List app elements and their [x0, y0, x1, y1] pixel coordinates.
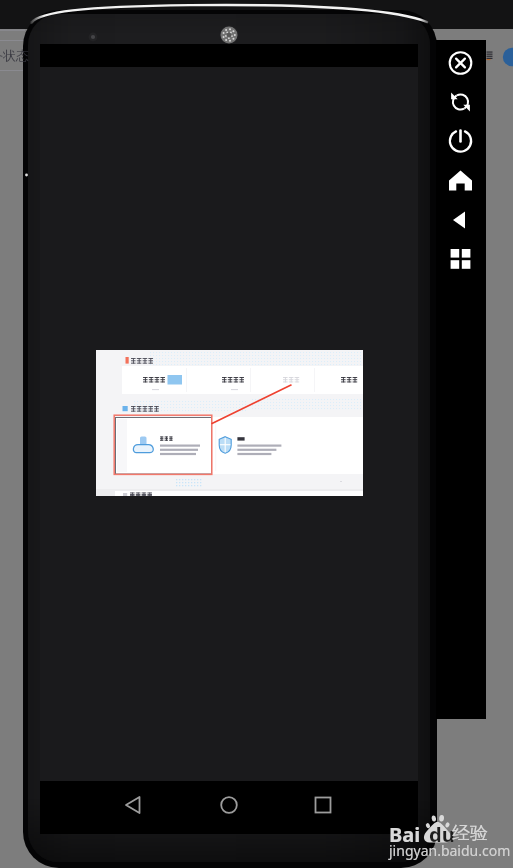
staticText: Bai: [389, 821, 421, 848]
button[interactable]: Apps: [436, 239, 486, 278]
staticText: 备状态: [0, 47, 29, 63]
button[interactable]: Back: [103, 781, 165, 834]
staticText: jingyan.baidu.com: [389, 841, 511, 860]
button[interactable]: Refresh: [436, 83, 486, 122]
button[interactable]: Close: [436, 44, 486, 83]
button[interactable]: Back: [436, 200, 486, 239]
button[interactable]: Home: [436, 161, 486, 200]
button[interactable]: Home: [198, 781, 260, 834]
staticText: du: [429, 821, 455, 848]
button[interactable]: Recents: [292, 781, 354, 834]
staticText: 经验: [452, 822, 488, 845]
button[interactable]: Power: [436, 122, 486, 161]
